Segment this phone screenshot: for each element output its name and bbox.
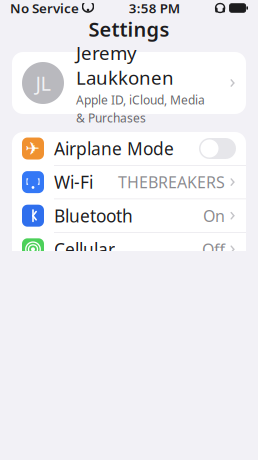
staticText: Off <box>202 239 225 260</box>
staticText: & Purchases <box>76 110 146 126</box>
staticText: On <box>203 205 225 226</box>
staticText: JL <box>35 70 50 96</box>
button[interactable]: JL <box>12 52 246 114</box>
button[interactable]: ✈ <box>12 132 246 166</box>
staticText: Bluetooth <box>54 204 133 227</box>
staticText: No Service <box>10 0 79 17</box>
staticText: Jeremy Laukkonen <box>76 40 174 90</box>
staticText: THEBREAKERS <box>118 171 225 193</box>
staticText: 3:58 PM <box>129 0 180 17</box>
staticText: Settings <box>88 16 169 42</box>
staticText: Apple ID, iCloud, Media <box>76 92 205 108</box>
staticText: Wi-Fi <box>54 171 93 194</box>
button[interactable]: Bluetooth <box>12 199 246 233</box>
button[interactable]: Cellular <box>12 233 246 266</box>
staticText: Cellular <box>54 238 115 261</box>
button[interactable]: Wi-Fi <box>12 166 246 199</box>
staticText: ✈ <box>25 139 40 158</box>
staticText: Airplane Mode <box>54 137 174 160</box>
